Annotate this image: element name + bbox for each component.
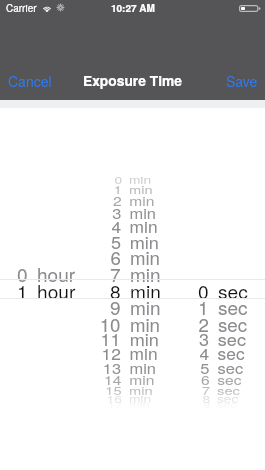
staticText: 8 xyxy=(110,277,121,301)
staticText: 4 xyxy=(199,342,209,362)
staticText: sec xyxy=(218,277,248,301)
staticText: 1 xyxy=(17,277,28,301)
staticText: 10:27 AM xyxy=(111,1,155,15)
button[interactable]: Minutes xyxy=(89,108,177,470)
button[interactable]: Cancel xyxy=(2,65,62,97)
staticText: 4 xyxy=(111,215,121,235)
staticText: 0 xyxy=(17,260,28,284)
staticText: 14 xyxy=(104,370,122,386)
staticText: 8 xyxy=(202,392,210,404)
button[interactable]: Hours xyxy=(0,108,89,470)
staticText: sec xyxy=(217,357,243,375)
staticText: 1 xyxy=(114,181,122,195)
staticText: min xyxy=(130,229,159,251)
staticText: 7 xyxy=(110,260,121,284)
staticText: sec xyxy=(217,392,238,404)
staticText: 2 xyxy=(198,310,209,333)
staticText: min xyxy=(129,392,151,404)
staticText: min xyxy=(129,357,156,375)
staticText: min xyxy=(129,370,154,386)
staticText: sec xyxy=(218,293,248,317)
staticText: min xyxy=(129,181,153,195)
staticText: sec xyxy=(217,399,237,409)
staticText: 0 xyxy=(198,277,209,301)
staticText: 9 xyxy=(110,293,121,317)
staticText: min xyxy=(130,277,161,301)
staticText: sec xyxy=(218,326,246,348)
staticText: 10 xyxy=(100,310,121,333)
staticText: min xyxy=(129,202,156,220)
staticText: Carrier xyxy=(6,1,37,15)
staticText: 5 xyxy=(200,357,210,375)
staticText: 9 xyxy=(203,399,211,409)
staticText: min xyxy=(130,342,158,362)
staticText: 6 xyxy=(201,370,210,386)
staticText: 1 xyxy=(198,293,209,317)
staticText: min xyxy=(130,326,159,348)
staticText: 12 xyxy=(102,342,121,362)
staticText: 3 xyxy=(199,326,209,348)
staticText: 11 xyxy=(100,326,121,348)
staticText: 5 xyxy=(111,229,121,251)
staticText: hour xyxy=(37,277,76,301)
staticText: min xyxy=(130,260,161,284)
staticText: min xyxy=(129,399,150,409)
staticText: 0 xyxy=(114,173,122,185)
staticText: 16 xyxy=(107,392,122,404)
staticText: min xyxy=(129,191,154,207)
staticText: sec xyxy=(217,382,240,396)
staticText: min xyxy=(129,173,151,185)
staticText: sec xyxy=(218,310,247,333)
button[interactable]: Seconds xyxy=(177,108,265,470)
staticText: min xyxy=(130,243,160,266)
staticText: 17 xyxy=(108,399,123,409)
staticText: Exposure Time xyxy=(83,70,182,90)
staticText: Cancel xyxy=(8,71,52,91)
staticText: 3 xyxy=(112,202,122,220)
button[interactable]: Save xyxy=(216,65,264,97)
staticText: 6 xyxy=(110,243,121,266)
staticText: sec xyxy=(217,370,242,386)
staticText: min xyxy=(130,215,158,235)
staticText: min xyxy=(130,310,160,333)
staticText: min xyxy=(130,293,161,317)
staticText: 2 xyxy=(113,191,122,207)
staticText: 13 xyxy=(103,357,122,375)
staticText: 7 xyxy=(202,382,210,396)
staticText: Save xyxy=(226,71,258,91)
staticText: min xyxy=(129,382,153,396)
staticText: hour xyxy=(37,260,76,284)
staticText: sec xyxy=(218,342,245,362)
staticText: 15 xyxy=(105,382,122,396)
